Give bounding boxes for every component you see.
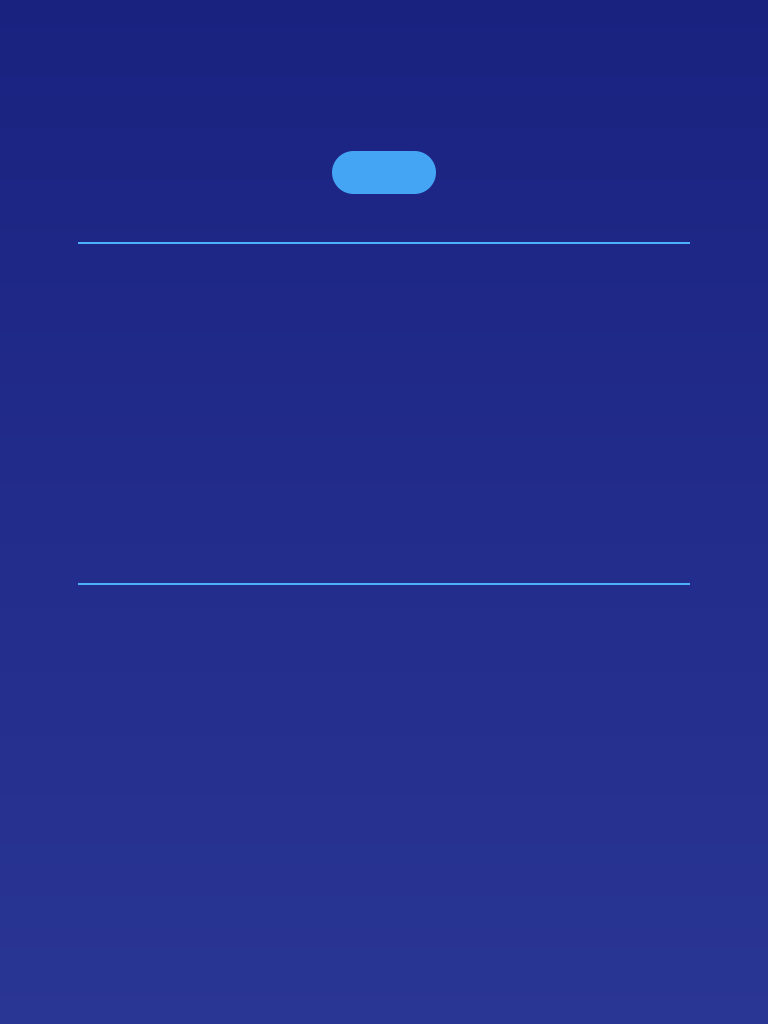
- button[interactable]: Primary action: [332, 151, 436, 194]
